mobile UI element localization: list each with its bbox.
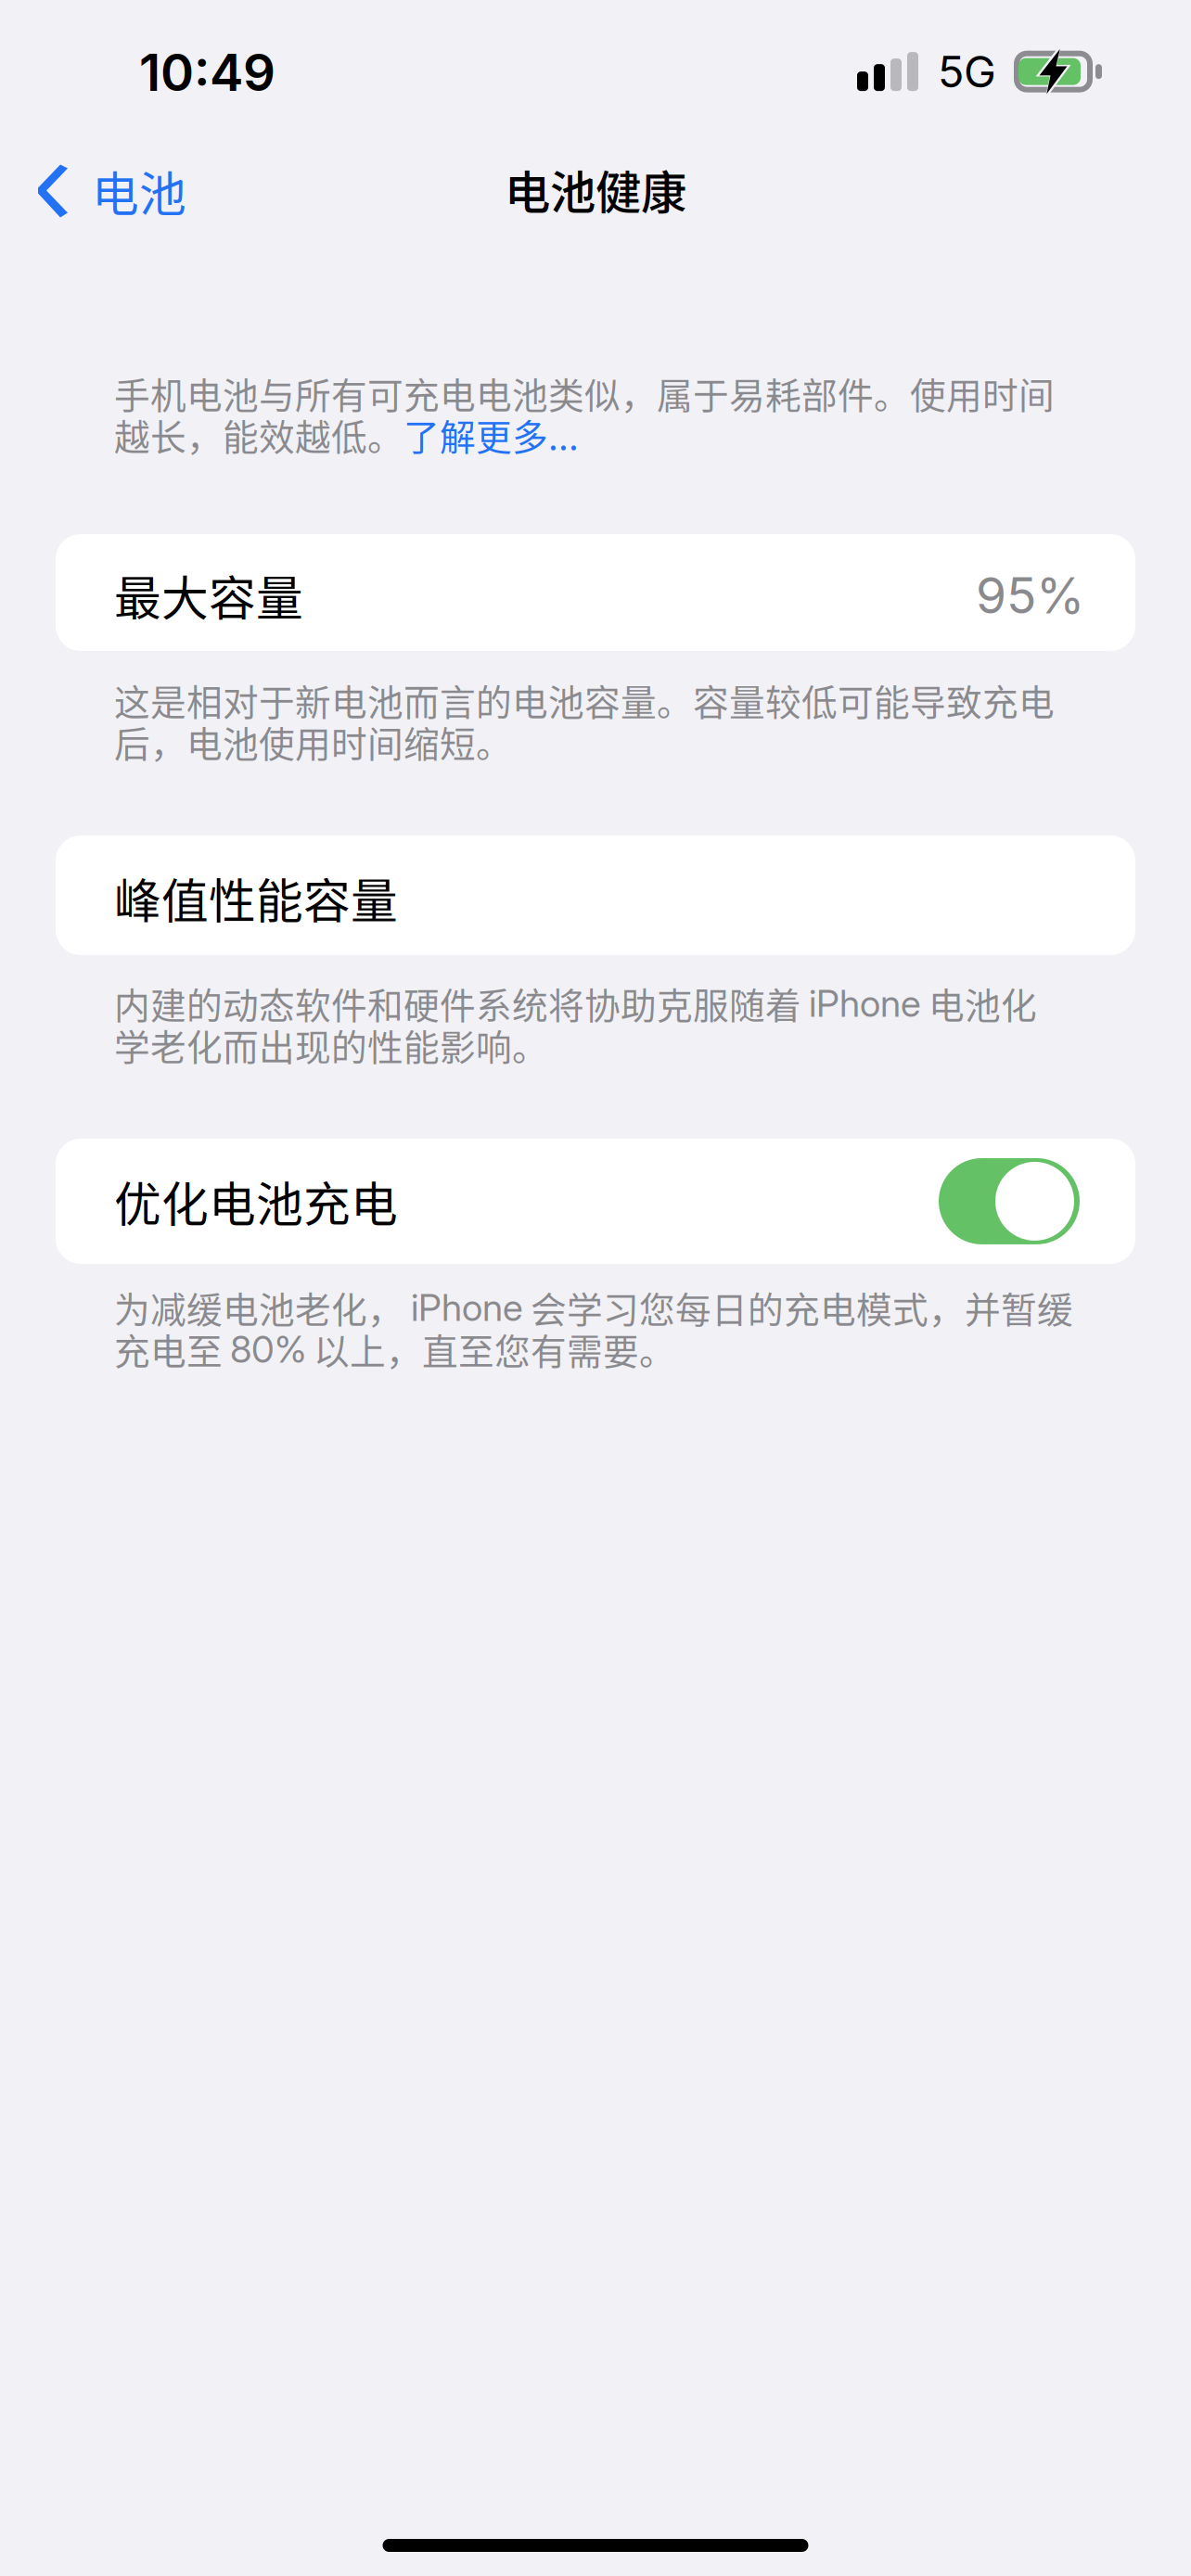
staticText: 为减缓电池老化， xyxy=(114,1281,403,1333)
staticText: 10:49 xyxy=(139,42,275,103)
staticText: 5G xyxy=(938,45,996,98)
button[interactable]: 优化电池充电 xyxy=(939,1158,1080,1244)
staticText: 内建的动态软件和硬件系统将协助克服随着 xyxy=(114,977,801,1029)
staticText: 后，电池使用时间缩短。 xyxy=(114,716,512,768)
staticText: 优化电池充电 xyxy=(114,1167,398,1235)
staticText: 95% xyxy=(976,565,1084,625)
staticText: 最大容量 xyxy=(114,561,303,629)
staticText: 手机电池与所有可充电电池类似，属于易耗部件。使用时间 xyxy=(114,367,1055,419)
button[interactable]: 电池 xyxy=(0,127,214,229)
staticText: 学老化而出现的性能影响。 xyxy=(114,1019,548,1071)
button[interactable]: 了解更多... xyxy=(403,409,579,461)
staticText: 以上，直至您有需要。 xyxy=(314,1323,675,1375)
staticText: 这是相对于新电池而言的电池容量。容量较低可能导致充电 xyxy=(114,674,1055,726)
staticText: 电池 xyxy=(92,157,186,225)
staticText: 会学习您每日的充电模式，并暂缓 xyxy=(531,1281,1073,1333)
staticText: iPhone xyxy=(411,1285,523,1330)
staticText: 电池健康 xyxy=(505,156,686,222)
button[interactable]: 最大容量 xyxy=(0,534,1191,651)
button[interactable]: 峰值性能容量 xyxy=(0,835,1191,955)
staticText: 了解更多... xyxy=(403,409,579,461)
staticText: 充电至 xyxy=(114,1323,223,1375)
staticText: iPhone xyxy=(809,981,921,1026)
staticText: 80% xyxy=(230,1327,306,1372)
staticText: 峰值性能容量 xyxy=(114,864,398,932)
staticText: 越长，能效越低。 xyxy=(114,409,403,461)
staticText: 电池化 xyxy=(928,977,1037,1029)
